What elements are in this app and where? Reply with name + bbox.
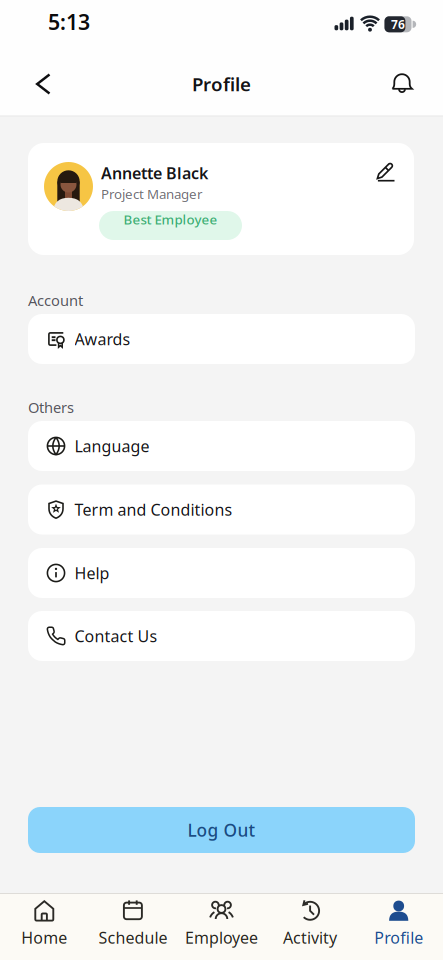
- button[interactable]: Awards: [28, 314, 415, 364]
- button[interactable]: Activity: [266, 894, 354, 958]
- button[interactable]: Language: [28, 421, 415, 471]
- staticText: Schedule: [98, 927, 167, 948]
- button[interactable]: Term and Conditions: [28, 484, 415, 534]
- staticText: Awards: [74, 328, 130, 350]
- staticText: Term and Conditions: [74, 499, 232, 520]
- button[interactable]: Home: [0, 894, 89, 958]
- staticText: Home: [21, 927, 67, 948]
- staticText: 5:13: [48, 7, 90, 36]
- staticText: Language: [74, 435, 149, 457]
- staticText: Help: [74, 562, 109, 584]
- staticText: Annette Black: [101, 162, 208, 184]
- button[interactable]: [370, 156, 402, 188]
- button[interactable]: Profile: [354, 894, 443, 958]
- staticText: Contact Us: [74, 625, 157, 647]
- staticText: Account: [28, 290, 83, 310]
- button[interactable]: [384, 66, 420, 102]
- staticText: Profile: [192, 71, 251, 96]
- staticText: Log Out: [187, 818, 255, 841]
- staticText: Profile: [374, 927, 423, 948]
- button[interactable]: Employee: [177, 894, 266, 958]
- button[interactable]: Schedule: [89, 894, 177, 958]
- staticText: Best Employee: [123, 210, 217, 228]
- button[interactable]: Help: [28, 548, 415, 598]
- staticText: Employee: [185, 927, 258, 948]
- button[interactable]: Log Out: [28, 807, 415, 853]
- staticText: Project Manager: [101, 185, 203, 203]
- button[interactable]: Contact Us: [28, 611, 415, 661]
- staticText: 76: [391, 16, 405, 32]
- staticText: Others: [28, 397, 74, 417]
- button[interactable]: [28, 66, 64, 102]
- staticText: Activity: [283, 927, 337, 948]
